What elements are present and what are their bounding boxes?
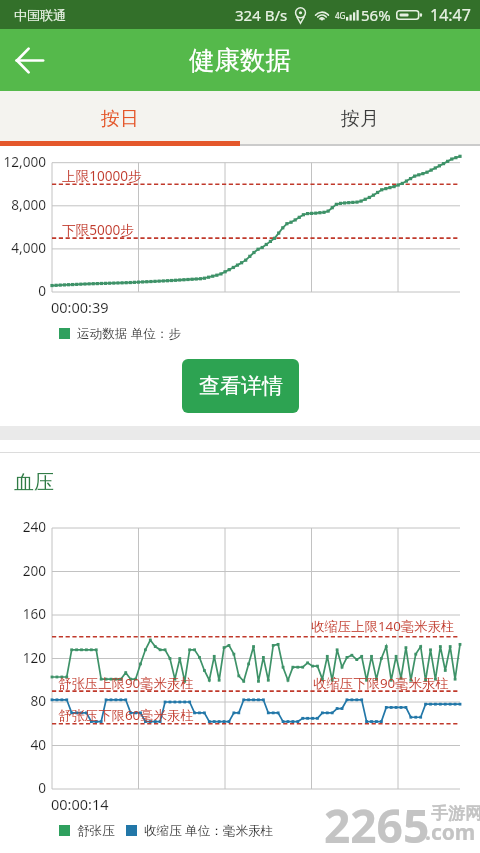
staticText: 80	[0, 691, 46, 710]
staticText: 舒张压	[77, 823, 115, 839]
staticText: 200	[0, 561, 46, 580]
staticText: 舒张压上限90毫米汞柱	[58, 674, 194, 692]
staticText: 2265	[324, 794, 430, 853]
staticText: 8,000	[0, 195, 46, 214]
staticText: 收缩压下限90毫米汞柱	[313, 674, 449, 692]
staticText: 4G	[335, 10, 346, 21]
staticText: 00:00:39	[51, 297, 109, 317]
staticText: .com	[425, 818, 476, 847]
staticText: 手游网	[431, 803, 480, 824]
staticText: 舒张压下限60毫米汞柱	[58, 706, 194, 724]
staticText: 血压	[14, 470, 54, 495]
staticText: 健康数据	[189, 44, 291, 76]
staticText: 按日	[101, 107, 139, 131]
staticText: 56%	[361, 5, 391, 25]
staticText: 00:00:14	[51, 794, 109, 814]
staticText: 查看详情	[199, 373, 283, 399]
button[interactable]: 查看详情	[182, 359, 299, 413]
staticText: 收缩压 单位：毫米汞柱	[144, 822, 274, 839]
staticText: 14:47	[430, 4, 471, 26]
staticText: 0	[0, 778, 46, 797]
staticText: 中国联通	[14, 7, 66, 23]
button[interactable]: 按日	[0, 91, 240, 146]
button[interactable]: Back	[0, 31, 58, 89]
staticText: 160	[0, 604, 46, 623]
staticText: 4,000	[0, 238, 46, 257]
staticText: 40	[0, 735, 46, 754]
staticText: 240	[0, 517, 46, 536]
staticText: 收缩压上限140毫米汞柱	[311, 617, 455, 635]
staticText: 120	[0, 648, 46, 667]
staticText: 运动数据 单位：步	[77, 325, 182, 342]
button[interactable]: 按月	[240, 91, 480, 146]
staticText: 下限5000步	[62, 220, 134, 239]
staticText: 324 B/s	[235, 5, 288, 25]
staticText: 12,000	[0, 152, 46, 171]
staticText: 0	[0, 281, 46, 300]
staticText: 按月	[341, 107, 379, 131]
staticText: 上限10000步	[62, 166, 142, 185]
